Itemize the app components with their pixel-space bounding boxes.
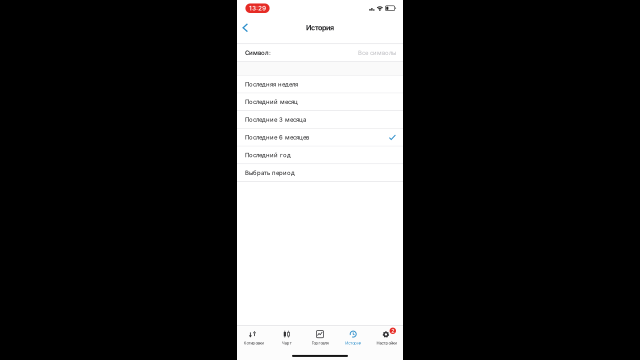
staticText: Последние 3 месяца: [245, 116, 306, 123]
staticText: Настройки: [376, 340, 396, 345]
staticText: Чарт: [282, 340, 292, 345]
button[interactable]: Последний месяц: [237, 93, 403, 110]
staticText: Последняя неделя: [245, 81, 298, 88]
staticText: Символ:: [245, 49, 271, 56]
button[interactable]: Торговля: [303, 326, 337, 347]
button[interactable]: Выбрать период: [237, 164, 403, 181]
staticText: Последние 6 месяцев: [245, 134, 309, 141]
button[interactable]: Последние 3 месяца: [237, 111, 403, 128]
button[interactable]: Символ:: [237, 44, 403, 61]
button[interactable]: 2: [370, 326, 403, 347]
button[interactable]: Чарт: [270, 326, 303, 347]
staticText: Последний год: [245, 151, 291, 159]
staticText: Торговля: [311, 340, 328, 345]
staticText: История: [306, 23, 334, 32]
staticText: История: [345, 340, 361, 345]
staticText: Последний месяц: [245, 98, 298, 106]
staticText: Выбрать период: [245, 169, 295, 176]
button[interactable]: Котировки: [237, 326, 270, 347]
button[interactable]: Последние 6 месяцев: [237, 129, 403, 146]
button[interactable]: Последний год: [237, 146, 403, 163]
button[interactable]: Назад: [239, 19, 252, 36]
button[interactable]: История: [337, 326, 370, 347]
staticText: Все символы: [358, 49, 396, 56]
staticText: 2: [391, 328, 394, 334]
button[interactable]: Последняя неделя: [237, 76, 403, 93]
staticText: 13:29: [249, 4, 266, 12]
staticText: Котировки: [244, 340, 264, 345]
